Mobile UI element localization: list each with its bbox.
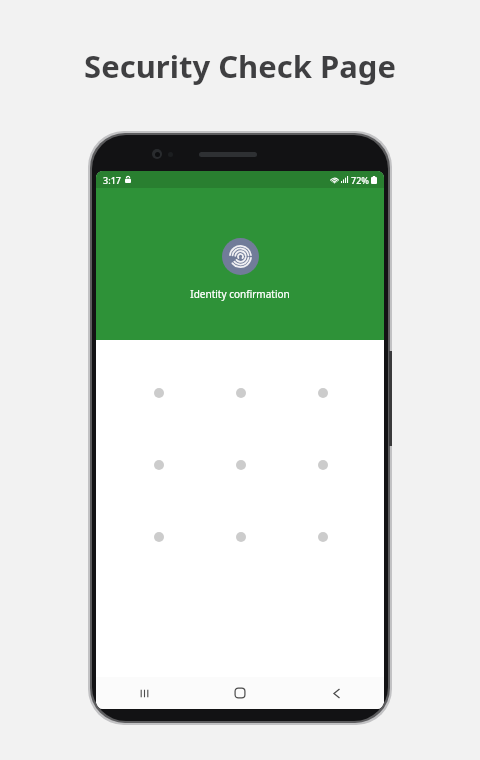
button[interactable]: Pattern dot 2 bbox=[227, 379, 254, 406]
staticText: 72% bbox=[351, 174, 369, 186]
staticText: 3:17 bbox=[103, 174, 121, 186]
button[interactable]: Recent apps bbox=[96, 677, 192, 709]
staticText: Identity confirmation bbox=[190, 287, 290, 301]
button[interactable]: Back bbox=[288, 677, 384, 709]
button[interactable]: Pattern dot 4 bbox=[145, 451, 172, 478]
button[interactable]: Scan fingerprint bbox=[222, 238, 259, 275]
button[interactable]: Pattern dot 6 bbox=[309, 451, 336, 478]
button[interactable]: Pattern dot 7 bbox=[145, 523, 172, 550]
button[interactable]: Home bbox=[192, 677, 288, 709]
staticText: Security Check Page bbox=[84, 45, 396, 87]
button[interactable]: Pattern dot 5 bbox=[227, 451, 254, 478]
button[interactable]: Pattern dot 1 bbox=[145, 379, 172, 406]
button[interactable]: Pattern dot 8 bbox=[227, 523, 254, 550]
button[interactable]: Pattern dot 9 bbox=[309, 523, 336, 550]
button[interactable]: Pattern dot 3 bbox=[309, 379, 336, 406]
